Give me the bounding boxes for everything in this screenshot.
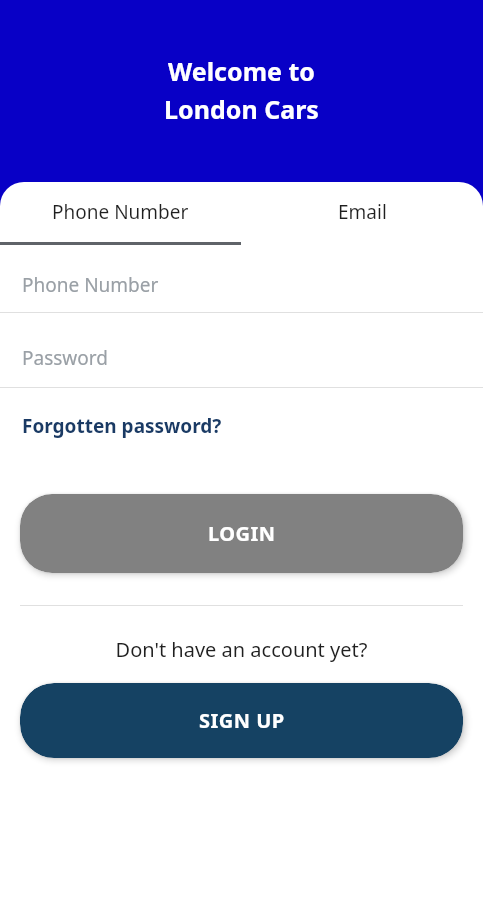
staticText: Welcome to	[168, 54, 315, 88]
staticText: London Cars	[164, 92, 319, 126]
button[interactable]: Forgotten password?	[22, 413, 222, 439]
staticText: Phone Number	[22, 272, 159, 298]
button[interactable]: Password	[0, 313, 483, 387]
button[interactable]: Phone Number	[0, 245, 483, 312]
staticText: LOGIN	[208, 520, 276, 547]
staticText: Phone Number	[52, 199, 189, 225]
staticText: Password	[22, 345, 108, 371]
button[interactable]: LOGIN	[20, 494, 463, 573]
button[interactable]: Email	[241, 182, 483, 242]
staticText: SIGN UP	[199, 707, 285, 734]
button[interactable]: SIGN UP	[20, 683, 463, 758]
button[interactable]: Phone Number	[0, 182, 241, 242]
staticText: Email	[338, 199, 387, 225]
staticText: Don't have an account yet?	[0, 636, 483, 663]
